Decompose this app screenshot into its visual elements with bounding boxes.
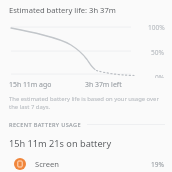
button[interactable]: Screen usage icon	[0, 156, 172, 172]
staticText: 50%	[151, 48, 165, 57]
staticText: 19%	[151, 160, 165, 169]
staticText: 3h 37m left	[85, 80, 122, 89]
staticText: RECENT BATTERY USAGE	[9, 121, 81, 129]
staticText: 15h 11m ago	[9, 80, 52, 89]
other: Screen usage icon	[14, 158, 26, 170]
staticText: Estimated battery life: 3h 37m	[9, 5, 116, 15]
staticText: 100%	[148, 23, 165, 32]
staticText: 15h 11m 21s on battery	[9, 137, 112, 150]
staticText: The estimated battery life is based on y…	[9, 95, 164, 111]
staticText: 0%	[155, 73, 165, 78]
staticText: Screen	[35, 159, 60, 169]
